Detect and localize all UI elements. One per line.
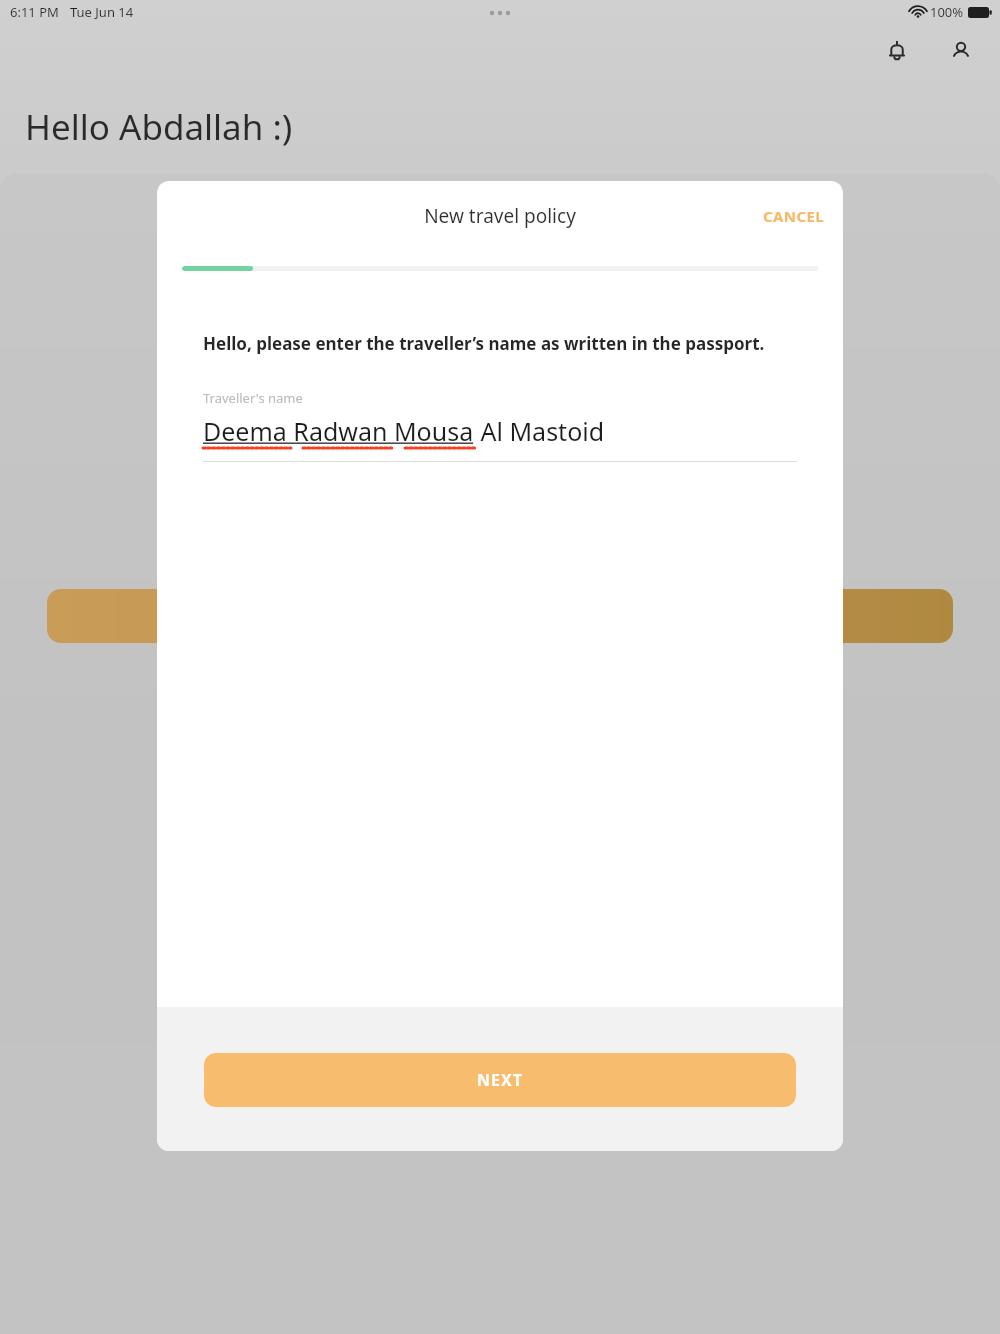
button[interactable] <box>47 589 953 643</box>
button[interactable]: Deema Radwan Mousa <box>203 414 797 448</box>
staticText: Deema Radwan Mousa <box>203 414 474 448</box>
staticText: 100% <box>930 3 964 21</box>
staticText: Hello, please enter the traveller’s name… <box>203 332 765 355</box>
button[interactable]: Notifications <box>872 26 922 76</box>
staticText: Hello Abdallah :) <box>25 103 293 151</box>
staticText: CANCEL <box>763 206 825 226</box>
staticText: Tue Jun 14 <box>70 3 134 21</box>
staticText: Traveller's name <box>203 389 303 407</box>
button[interactable]: CANCEL <box>745 196 843 236</box>
staticText: NEXT <box>477 1069 523 1091</box>
staticText: Al Mastoid <box>474 414 605 448</box>
button[interactable]: NEXT <box>204 1053 796 1107</box>
staticText: New travel policy <box>424 203 576 229</box>
button[interactable]: Profile <box>936 26 986 76</box>
staticText: 6:11 PM <box>10 3 59 21</box>
